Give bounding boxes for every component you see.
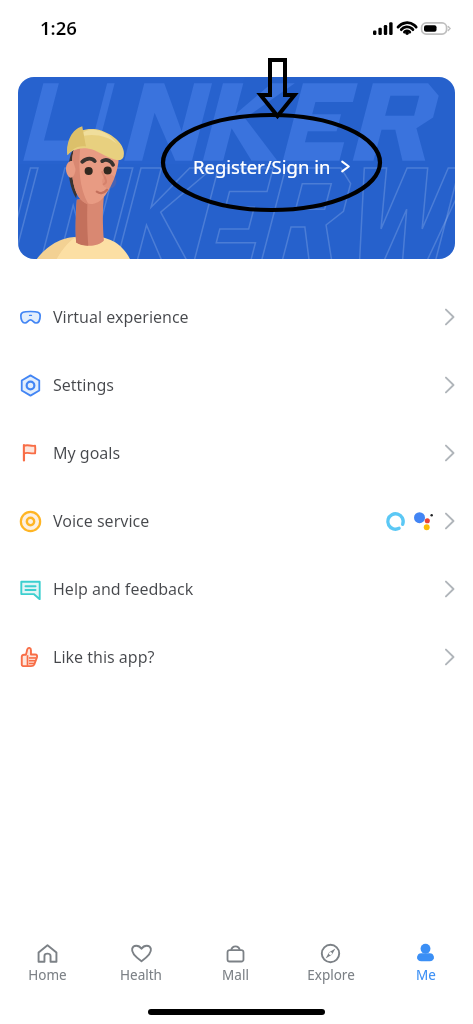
staticText: Like this app?	[53, 646, 155, 668]
button[interactable]: Help and feedback	[0, 555, 473, 623]
staticText: Register/Sign in	[193, 154, 331, 179]
button[interactable]: Voice service	[0, 487, 473, 555]
button[interactable]: Health	[94, 940, 188, 984]
staticText: My goals	[53, 442, 121, 464]
button[interactable]: Mall	[188, 940, 283, 984]
staticText: Help and feedback	[53, 578, 194, 600]
staticText: Mall	[222, 966, 249, 984]
staticText: Explore	[307, 966, 355, 984]
staticText: Me	[416, 966, 436, 984]
staticText: Home	[28, 966, 67, 984]
button[interactable]: My goals	[0, 419, 473, 487]
staticText: Voice service	[53, 510, 150, 532]
button[interactable]: Home	[0, 940, 94, 984]
button[interactable]: Explore	[283, 940, 378, 984]
staticText: Health	[120, 966, 162, 984]
button[interactable]: Me	[378, 940, 473, 984]
staticText: 1:26	[40, 15, 77, 40]
button[interactable]: Register/Sign in	[18, 77, 455, 259]
button[interactable]: Settings	[0, 351, 473, 419]
button[interactable]: Virtual experience	[0, 283, 473, 351]
button[interactable]: Like this app?	[0, 623, 473, 691]
staticText: Settings	[53, 374, 114, 396]
staticText: Virtual experience	[53, 306, 189, 328]
